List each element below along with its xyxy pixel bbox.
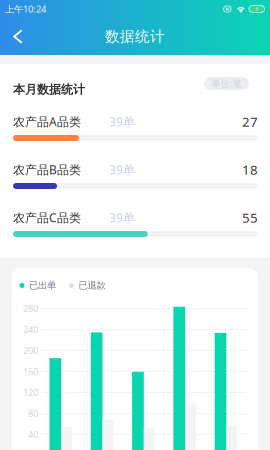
button[interactable]: Back (0, 18, 36, 55)
staticText: 55 (242, 209, 258, 226)
staticText: 39单 (109, 113, 135, 129)
staticText: 农产品B品类 (13, 161, 81, 177)
staticText: 农产品C品类 (13, 209, 81, 225)
staticText: 已退款 (78, 280, 105, 291)
staticText: 单位:笔 (211, 77, 241, 90)
staticText: 160 (23, 365, 38, 378)
staticText: 已出单 (29, 280, 56, 291)
staticText: 18 (242, 161, 258, 178)
staticText: 80 (28, 407, 38, 420)
staticText: 40 (28, 428, 38, 441)
staticText: 数据统计 (105, 27, 165, 45)
staticText: 120 (23, 386, 38, 399)
staticText: 农产品A品类 (13, 113, 81, 129)
staticText: 本月数据统计 (13, 82, 85, 97)
staticText: 27 (242, 113, 258, 130)
staticText: 200 (23, 344, 38, 357)
staticText: 上午10:24 (5, 3, 46, 15)
staticText: 39单 (109, 161, 135, 177)
staticText: 39单 (109, 209, 135, 225)
staticText: 240 (23, 323, 38, 336)
staticText: 280 (23, 302, 38, 315)
